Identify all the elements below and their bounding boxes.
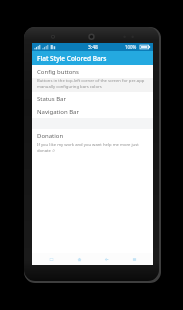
staticText: 3:48 <box>88 44 98 51</box>
button[interactable]: Donation <box>32 129 153 156</box>
button[interactable]: Status Bar <box>32 92 153 105</box>
staticText: Navigation Bar <box>37 108 79 116</box>
button[interactable]: Home <box>71 253 87 265</box>
button[interactable]: Navigation Bar <box>32 105 153 118</box>
button[interactable]: Back <box>98 253 114 265</box>
staticText: Status Bar <box>37 95 66 103</box>
staticText: Buttons in the top-left corner of the sc… <box>37 78 145 89</box>
staticText: If you like my work and you want help me… <box>37 142 150 153</box>
staticText: Flat Style Colored Bars <box>37 54 107 63</box>
button[interactable]: Recents <box>43 253 59 265</box>
staticText: Config buttons <box>37 68 79 76</box>
button[interactable]: Flat Style Colored Bars <box>32 51 153 65</box>
button[interactable]: Menu <box>126 253 142 265</box>
staticText: Donation <box>37 132 64 140</box>
staticText: 100% <box>125 44 137 50</box>
button[interactable]: Config buttons <box>32 65 153 92</box>
